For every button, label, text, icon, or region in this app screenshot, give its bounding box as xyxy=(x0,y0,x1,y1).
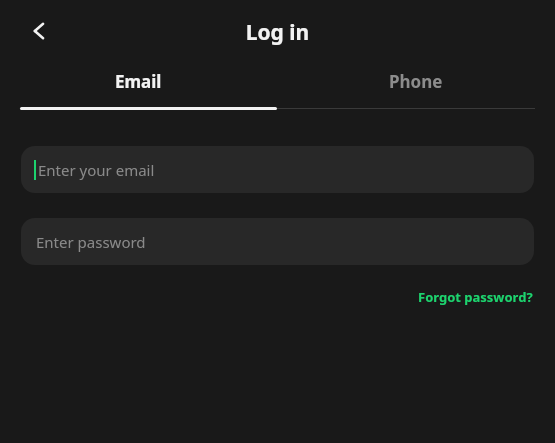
staticText: Enter password xyxy=(36,232,146,252)
staticText: Email xyxy=(115,70,162,93)
button[interactable]: Forgot password? xyxy=(416,285,535,309)
button[interactable]: Enter password xyxy=(21,218,534,265)
button[interactable]: Email xyxy=(0,62,277,100)
button[interactable]: Phone xyxy=(277,62,555,100)
staticText: Forgot password? xyxy=(418,288,533,306)
button[interactable]: Back xyxy=(18,9,62,53)
staticText: Log in xyxy=(0,18,555,47)
staticText: Phone xyxy=(389,70,443,93)
button[interactable]: Enter your email xyxy=(21,146,534,193)
staticText: Enter your email xyxy=(38,160,155,180)
